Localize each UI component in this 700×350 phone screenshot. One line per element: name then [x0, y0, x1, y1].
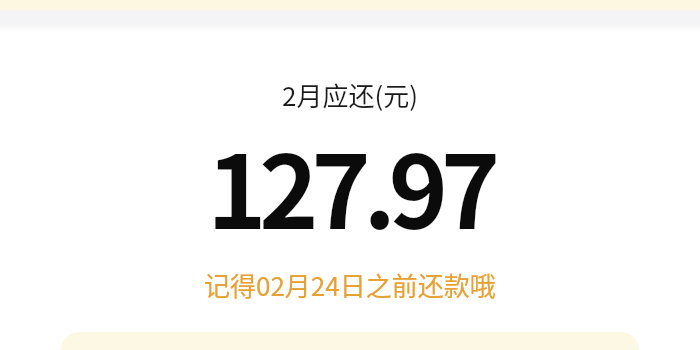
staticText: 2月应还(元): [282, 76, 419, 114]
button[interactable]: 账单详情: [61, 332, 639, 350]
staticText: 127.97: [207, 112, 493, 258]
staticText: 记得02月24日之前还款哦: [204, 266, 496, 304]
